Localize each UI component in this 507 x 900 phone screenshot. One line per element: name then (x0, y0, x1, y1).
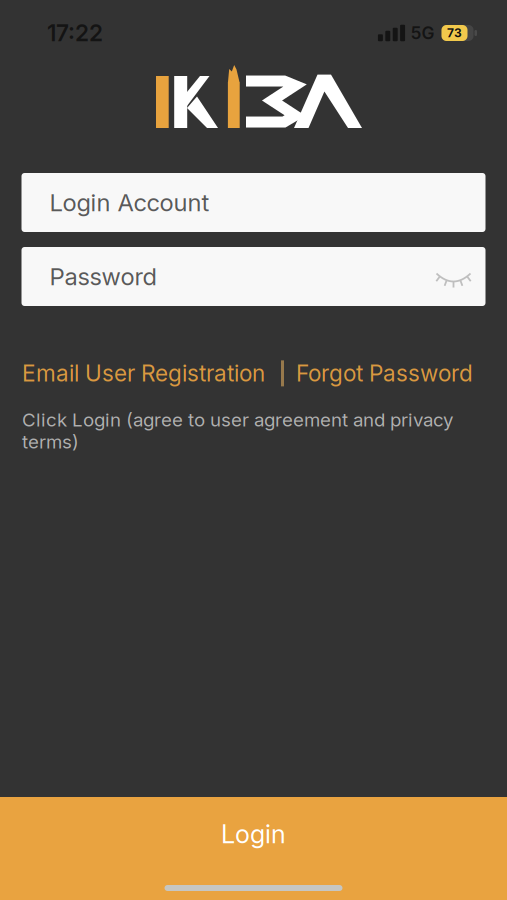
button[interactable]: Login Account (21, 173, 485, 232)
staticText: Login (221, 819, 286, 849)
button[interactable]: Forgot Password (296, 360, 473, 387)
button[interactable]: Password (21, 247, 485, 306)
staticText: 17:22 (47, 20, 103, 46)
staticText: Email User Registration (22, 360, 265, 387)
staticText: 5G (410, 23, 434, 43)
staticText: Login Account (49, 188, 209, 217)
staticText: Forgot Password (296, 360, 473, 387)
staticText: 73 (447, 26, 462, 40)
button[interactable]: Email User Registration (22, 360, 265, 387)
button[interactable]: Show password (435, 263, 471, 289)
button[interactable]: Login (0, 797, 507, 900)
staticText: Password (49, 262, 156, 291)
staticText: Click Login (agree to user agreement and… (22, 409, 453, 453)
